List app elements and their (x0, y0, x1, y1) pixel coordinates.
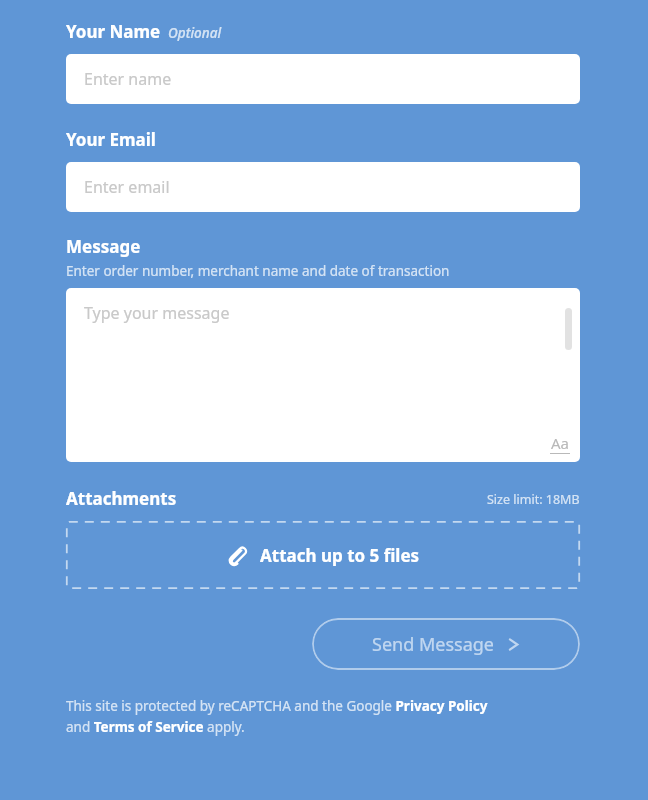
staticText: Type your message (84, 302, 230, 324)
staticText: This site is protected by reCAPTCHA and … (66, 697, 580, 736)
staticText: Your Email (66, 128, 156, 151)
staticText: Aa (551, 433, 570, 453)
other: Attach files (226, 545, 248, 567)
staticText: Attach up to 5 files (260, 544, 420, 567)
button[interactable]: Enter name (66, 54, 580, 104)
staticText: Send Message (372, 632, 494, 657)
button[interactable]: Type your message (66, 288, 580, 462)
staticText: Message (66, 235, 141, 258)
button[interactable]: Attach files (66, 521, 580, 589)
button[interactable]: Enter email (66, 162, 580, 212)
staticText: Your Name (66, 20, 161, 43)
button[interactable]: Send Message (312, 618, 580, 670)
staticText: Enter email (84, 176, 170, 198)
staticText: Size limit: 18MB (487, 491, 580, 508)
staticText: Attachments (66, 487, 177, 510)
staticText: Enter order number, merchant name and da… (66, 262, 450, 280)
staticText: Optional (168, 24, 222, 42)
staticText: Enter name (84, 68, 172, 90)
